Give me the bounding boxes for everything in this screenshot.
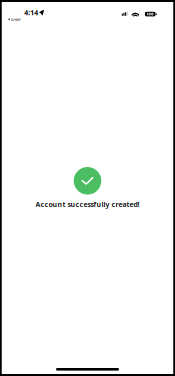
staticText: 4:14 — [24, 8, 38, 17]
staticText: Account successfully created! — [35, 200, 139, 209]
staticText: Gmail — [11, 17, 21, 22]
button[interactable]: Back to Gmail — [8, 17, 21, 22]
